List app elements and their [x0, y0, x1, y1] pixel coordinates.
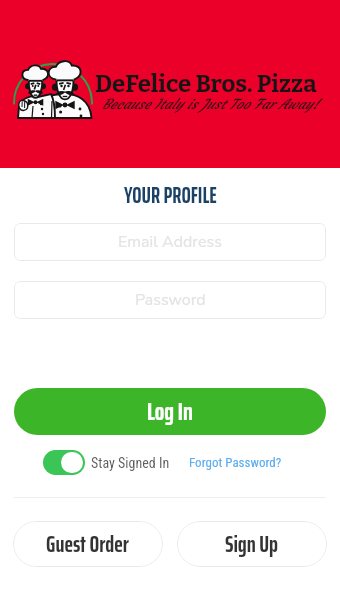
staticText: Log In [147, 392, 193, 431]
button[interactable]: Email Address [14, 223, 326, 261]
staticText: Because Italy is Just Too Far Away! [102, 96, 319, 113]
button[interactable]: Log In [14, 388, 326, 435]
button[interactable]: Password [14, 281, 326, 319]
staticText: Sign Up [225, 526, 279, 562]
staticText: Guest Order [46, 526, 130, 562]
button[interactable]: Stay Signed In [43, 450, 170, 475]
staticText: Password [135, 289, 206, 311]
button[interactable]: Guest Order [13, 521, 163, 567]
staticText: Stay Signed In [91, 455, 170, 471]
staticText: Email Address [118, 231, 222, 253]
staticText: DeFelice Bros. Pizza [95, 70, 317, 99]
button[interactable]: Sign Up [177, 521, 327, 567]
staticText: YOUR PROFILE [124, 178, 217, 213]
button[interactable]: Forgot Password? [189, 455, 282, 470]
